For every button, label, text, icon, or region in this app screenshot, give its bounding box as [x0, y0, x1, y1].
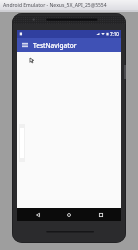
- staticText: TestNavigator: [33, 41, 77, 50]
- staticText: 7:10: [110, 31, 119, 37]
- button[interactable]: Open navigation drawer: [20, 40, 30, 50]
- staticText: Android Emulator - Nexus_5X_API_25@5554: [3, 2, 107, 9]
- button[interactable]: Back: [27, 208, 49, 221]
- button[interactable]: Home: [58, 208, 80, 221]
- button[interactable]: Recent apps: [90, 208, 112, 221]
